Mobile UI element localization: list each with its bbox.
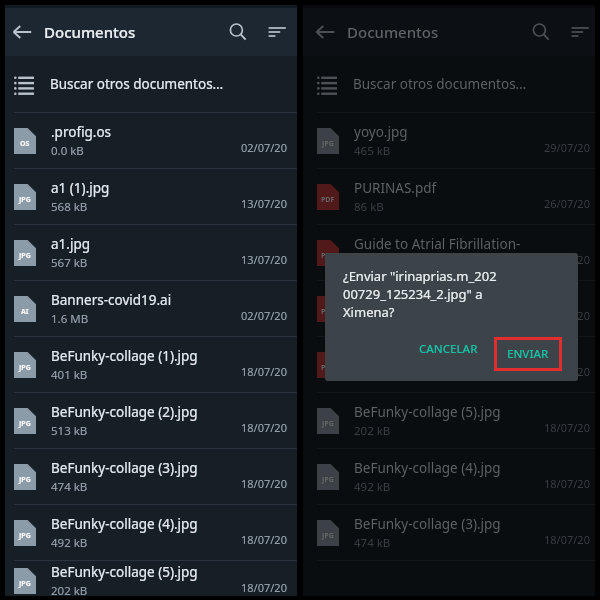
staticText: BeFunky-collage (3).jpg <box>51 459 198 477</box>
button[interactable]: Back <box>303 8 347 56</box>
staticText: 1.6 MB <box>51 311 89 327</box>
staticText: Banners-covid19.ai <box>51 291 172 309</box>
staticText: 0.0 kB <box>51 143 84 159</box>
staticText: BeFunky-collage (5).jpg <box>51 563 198 581</box>
staticText: 513 kB <box>51 423 88 439</box>
staticText: 26/07/20 <box>544 196 590 211</box>
staticText: CANCELAR <box>419 341 478 357</box>
staticText: 24/07/20 <box>544 252 590 267</box>
button[interactable]: JPG <box>0 449 297 505</box>
button[interactable]: PDF <box>303 225 600 281</box>
button[interactable]: JPG <box>303 449 600 505</box>
staticText: 02/07/20 <box>241 140 287 155</box>
staticText: JPG <box>19 251 31 261</box>
button[interactable]: OS <box>0 113 297 169</box>
button[interactable]: Sort <box>560 8 600 56</box>
staticText: PDF <box>321 363 335 373</box>
button[interactable]: JPG <box>303 505 600 561</box>
staticText: 18/07/20 <box>241 476 287 491</box>
staticText: BeFunky-collage (1).jpg <box>51 347 198 365</box>
staticText: 18/07/20 <box>241 580 287 595</box>
button[interactable]: CANCELAR <box>409 335 488 363</box>
staticText: Documentos <box>347 22 522 42</box>
staticText: JPG <box>322 475 334 485</box>
button[interactable]: Search <box>219 8 257 56</box>
staticText: BeFunky-collage (4).jpg <box>51 515 198 533</box>
staticText: 492 kB <box>51 535 88 551</box>
staticText: 00729_125234_2.jpg" a <box>343 285 483 303</box>
button[interactable]: Buscar otros documentos… <box>0 56 297 112</box>
staticText: 13/07/20 <box>241 252 287 267</box>
staticText: 18/07/20 <box>241 532 287 547</box>
staticText: .profig.os <box>51 123 112 141</box>
button[interactable]: Sort <box>257 8 297 56</box>
button[interactable]: JPG <box>0 561 297 600</box>
staticText: 13/07/20 <box>241 196 287 211</box>
staticText: Guide to Atrial Fibrillation-Spanish.pdf <box>354 235 544 253</box>
staticText: JPG <box>19 579 31 589</box>
staticText: La_Dieta_de_la_Milpa.pdf <box>354 291 513 309</box>
staticText: JPG <box>19 195 31 205</box>
staticText: 18/07/20 <box>544 476 590 491</box>
button[interactable]: PDF <box>303 337 600 393</box>
staticText: 86 kB <box>354 199 384 215</box>
button[interactable]: JPG <box>0 337 297 393</box>
staticText: Buscar otros documentos… <box>50 75 224 93</box>
staticText: 18/07/20 <box>241 364 287 379</box>
staticText: JPG <box>19 419 31 429</box>
button[interactable]: PDF <box>303 169 600 225</box>
staticText: 474 kB <box>51 479 88 495</box>
staticText: 465 kB <box>354 143 391 159</box>
button[interactable]: JPG <box>0 225 297 281</box>
staticText: JPG <box>19 475 31 485</box>
button[interactable]: Back <box>0 8 44 56</box>
button[interactable]: JPG <box>0 169 297 225</box>
staticText: PURINAS.pdf <box>354 179 437 197</box>
staticText: 29/07/20 <box>544 140 590 155</box>
staticText: 23/07/20 <box>544 308 590 323</box>
staticText: 18/07/20 <box>544 420 590 435</box>
staticText: PDF <box>321 251 335 261</box>
staticText: ENVIAR <box>507 346 549 362</box>
staticText: 202 kB <box>354 423 391 439</box>
button[interactable]: JPG <box>0 393 297 449</box>
button[interactable]: Search <box>522 8 560 56</box>
staticText: JPG <box>19 531 31 541</box>
staticText: 567 kB <box>51 255 88 271</box>
staticText: ¿Enviar "irinaprias.m_202 <box>343 267 497 285</box>
button[interactable]: JPG <box>303 113 600 169</box>
staticText: PDF <box>321 307 335 317</box>
staticText: JPG <box>322 531 334 541</box>
staticText: PDF <box>321 195 335 205</box>
staticText: 18/07/20 <box>544 532 590 547</box>
button[interactable]: AI <box>0 281 297 337</box>
staticText: 568 kB <box>51 199 88 215</box>
staticText: 492 kB <box>354 479 391 495</box>
staticText: BeFunky-collage (2).jpg <box>51 403 198 421</box>
button[interactable]: PDF <box>303 281 600 337</box>
staticText: BeFunky-collage (4).jpg <box>354 459 501 477</box>
button[interactable]: Buscar otros documentos… <box>303 56 600 112</box>
button[interactable]: JPG <box>303 393 600 449</box>
staticText: Documentos <box>44 22 219 42</box>
staticText: JPG <box>322 419 334 429</box>
button[interactable]: ENVIAR <box>492 335 564 373</box>
staticText: 20/07/20 <box>544 364 590 379</box>
staticText: 18/07/20 <box>241 420 287 435</box>
staticText: 3.3 MB <box>354 311 392 327</box>
button[interactable]: JPG <box>0 505 297 561</box>
staticText: OS <box>20 139 30 149</box>
staticText: 474 kB <box>354 535 391 551</box>
staticText: 02/07/20 <box>241 308 287 323</box>
staticText: Presentación FAMOnlineV2 (1).pdf <box>354 347 544 365</box>
staticText: 401 kB <box>51 367 88 383</box>
staticText: AI <box>21 307 29 317</box>
staticText: Buscar otros documentos… <box>353 75 527 93</box>
staticText: a1.jpg <box>51 235 91 253</box>
staticText: BeFunky-collage (5).jpg <box>354 403 501 421</box>
staticText: JPG <box>322 139 334 149</box>
staticText: JPG <box>19 363 31 373</box>
staticText: a1 (1).jpg <box>51 179 110 197</box>
staticText: 1.3 MB <box>354 367 392 383</box>
